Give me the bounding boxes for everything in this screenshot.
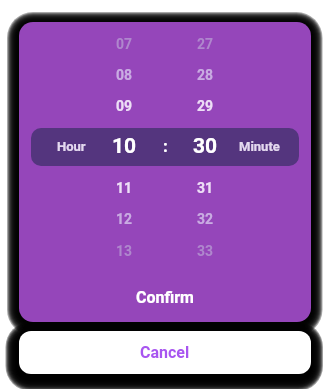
button[interactable]: Cancel — [19, 331, 311, 374]
staticText: 29 — [197, 98, 214, 114]
staticText: Minute — [239, 139, 280, 154]
staticText: 09 — [116, 98, 133, 114]
button[interactable]: Hour — [41, 131, 101, 161]
staticText: 10 — [112, 134, 137, 159]
staticText: Hour — [57, 139, 86, 154]
staticText: 30 — [193, 134, 218, 159]
staticText: Confirm — [136, 288, 194, 307]
button[interactable]: 32 — [170, 204, 240, 234]
button[interactable]: 33 — [170, 236, 240, 266]
button[interactable]: Confirm — [110, 280, 220, 314]
button[interactable]: 30 — [170, 131, 240, 161]
button[interactable]: 07 — [89, 29, 159, 59]
staticText: 33 — [197, 243, 214, 259]
button[interactable] — [31, 128, 299, 166]
button[interactable]: 11 — [89, 173, 159, 203]
staticText: 13 — [116, 243, 133, 259]
staticText: 08 — [116, 67, 133, 83]
button[interactable]: 08 — [89, 60, 159, 90]
staticText: 12 — [116, 211, 133, 227]
button[interactable]: 29 — [170, 91, 240, 121]
button[interactable]: 13 — [89, 236, 159, 266]
staticText: : — [163, 136, 168, 156]
staticText: 28 — [197, 67, 214, 83]
staticText: 27 — [197, 36, 214, 52]
button[interactable]: 12 — [89, 204, 159, 234]
staticText: 32 — [197, 211, 214, 227]
button[interactable]: 10 — [89, 131, 159, 161]
button[interactable]: Minute — [224, 131, 294, 161]
button[interactable]: 09 — [89, 91, 159, 121]
staticText: 07 — [116, 36, 133, 52]
button[interactable]: 31 — [170, 173, 240, 203]
button[interactable]: 27 — [170, 29, 240, 59]
staticText: Cancel — [140, 343, 190, 362]
button[interactable]: 28 — [170, 60, 240, 90]
staticText: 11 — [116, 180, 133, 196]
staticText: 31 — [197, 180, 214, 196]
